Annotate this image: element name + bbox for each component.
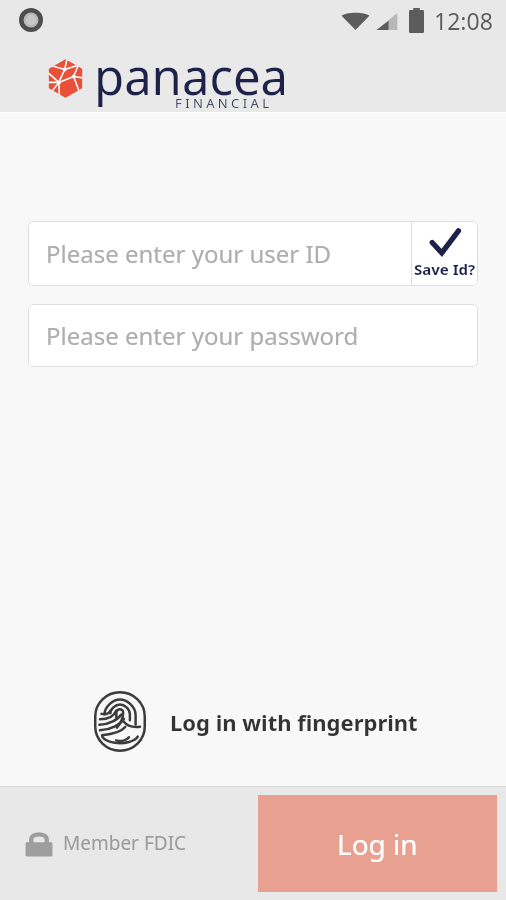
staticText: Please enter your user ID bbox=[46, 237, 332, 270]
button[interactable]: Please enter your password bbox=[28, 304, 478, 367]
staticText: F I N A N C I A L bbox=[175, 94, 270, 112]
button[interactable]: Member FDIC bbox=[25, 827, 187, 859]
staticText: panacea bbox=[94, 43, 289, 110]
button[interactable]: Log in with fingerprint bbox=[5, 691, 506, 752]
staticText: Member FDIC bbox=[63, 830, 187, 856]
button[interactable]: Log in bbox=[258, 795, 497, 892]
button[interactable]: Please enter your user ID bbox=[28, 221, 411, 286]
staticText: 12:08 bbox=[434, 5, 493, 36]
staticText: Log in with fingerprint bbox=[170, 707, 418, 737]
button[interactable]: Save Id bbox=[412, 221, 478, 286]
staticText: Log in bbox=[337, 825, 418, 863]
staticText: Save Id? bbox=[414, 259, 476, 279]
staticText: Please enter your password bbox=[46, 319, 359, 352]
